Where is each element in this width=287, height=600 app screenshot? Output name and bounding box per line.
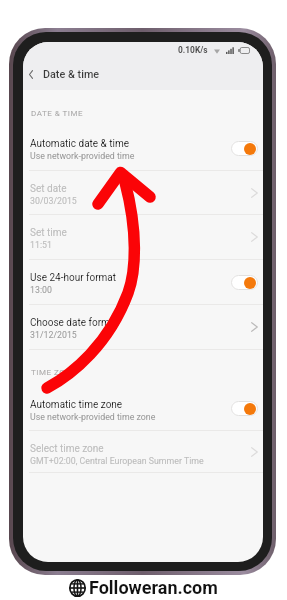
staticText: Select time zone: [30, 443, 104, 455]
button[interactable]: Back: [23, 58, 38, 90]
staticText: 0.10K/s: [178, 45, 208, 55]
staticText: TIME ZONE: [31, 368, 77, 377]
button[interactable]: Automatic date & time: [23, 126, 263, 171]
staticText: GMT+02:00, Central European Summer Time: [30, 456, 204, 466]
button[interactable]: Use 24-hour format: [23, 260, 263, 305]
staticText: Choose date format: [30, 317, 119, 329]
staticText: Use network-provided time zone: [30, 412, 156, 422]
staticText: 13:00: [30, 285, 52, 295]
button[interactable]: Automatic time zone: [23, 387, 263, 431]
staticText: Date & time: [43, 68, 100, 81]
button[interactable]: Set date: [23, 171, 263, 215]
staticText: Followeran.com: [89, 577, 218, 598]
staticText: Set date: [30, 183, 67, 195]
staticText: Set time: [30, 227, 67, 239]
staticText: 30/03/2015: [30, 196, 77, 206]
staticText: Automatic time zone: [30, 399, 123, 411]
staticText: 11:51: [30, 240, 52, 250]
staticText: Automatic date & time: [30, 138, 130, 150]
staticText: DATE & TIME: [31, 109, 83, 118]
button[interactable]: Set time: [23, 215, 263, 260]
button[interactable]: Select time zone: [23, 431, 263, 473]
button[interactable]: Choose date format: [23, 305, 263, 350]
staticText: Use 24-hour format: [30, 272, 117, 284]
staticText: 31/12/2015: [30, 330, 77, 340]
staticText: Use network-provided time: [30, 151, 135, 161]
